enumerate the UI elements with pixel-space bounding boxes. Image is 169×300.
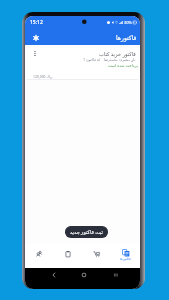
button[interactable]: Products [53,244,82,268]
staticText: 30% [124,20,132,25]
staticText: فاکتور خرید کتاب [99,50,136,57]
staticText: 120,000 ریال [33,74,53,79]
button[interactable]: ثبت فاکتور جدید [65,226,108,238]
staticText: 15:12 [30,19,43,26]
staticText: کد فاکتور: 1 [83,57,101,62]
button[interactable]: Settings [30,32,41,43]
staticText: ثبت فاکتور جدید [70,229,103,236]
staticText: فاکتورها [120,257,131,261]
button[interactable]: Recents [110,269,122,281]
button[interactable]: Cart [82,244,111,268]
button[interactable]: More options [27,48,138,80]
button[interactable]: Invoices [111,244,140,268]
staticText: پرداخت شده است [108,63,138,68]
button[interactable]: Home [78,269,90,281]
staticText: فاکتورها [116,34,137,41]
button[interactable]: Customers [25,244,53,268]
button[interactable]: More options [31,49,39,57]
staticText: نام مشتری: محمدرضا [104,57,136,62]
button[interactable]: Back [48,269,60,281]
